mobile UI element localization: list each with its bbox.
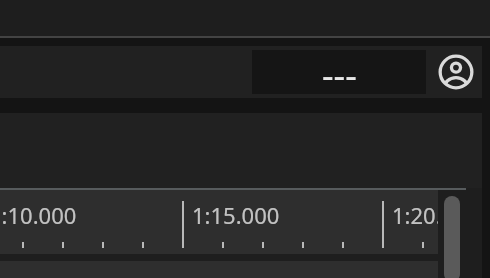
other: Scroll bbox=[444, 196, 460, 278]
staticText: 1:15.000 bbox=[192, 200, 280, 226]
button[interactable]: Account bbox=[438, 54, 474, 90]
button[interactable]: --- bbox=[252, 50, 426, 94]
staticText: 1:10.000 bbox=[0, 200, 77, 226]
staticText: 1:20.000 bbox=[392, 200, 438, 226]
staticText: --- bbox=[322, 50, 357, 94]
